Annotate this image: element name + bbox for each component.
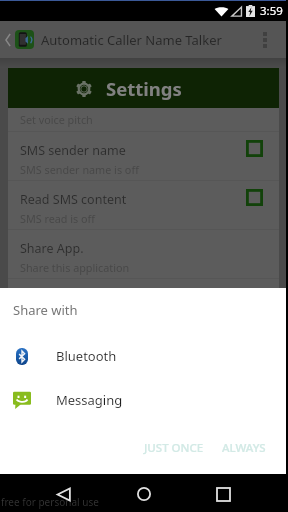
button[interactable]: Recent apps	[199, 474, 247, 512]
button[interactable]: Read SMS content	[8, 181, 279, 229]
staticText: 3:59	[260, 3, 283, 19]
button[interactable]: Home	[120, 474, 168, 512]
staticText: Read SMS content	[20, 191, 127, 208]
staticText: Automatic Caller Name Talker	[41, 31, 222, 49]
button[interactable]: Messaging	[0, 378, 286, 422]
staticText: SMS sender name is off	[20, 162, 139, 177]
staticText: SMS read is off	[20, 211, 96, 226]
staticText: free for personal use	[1, 495, 99, 509]
button[interactable]: Navigate up	[1, 26, 14, 54]
staticText: JUST ONCE	[144, 440, 204, 456]
button[interactable]: ALWAYS	[216, 434, 272, 462]
staticText: ALWAYS	[222, 440, 266, 456]
button[interactable]: Back	[40, 474, 88, 512]
button[interactable]: SMS sender name	[8, 132, 279, 180]
staticText: Messaging	[56, 391, 123, 409]
staticText: Settings	[106, 76, 182, 101]
staticText: Set voice pitch	[20, 112, 93, 127]
staticText: SMS sender name	[20, 142, 126, 159]
staticText: Share with	[13, 301, 78, 319]
button[interactable]: More options	[253, 21, 277, 58]
staticText: Share this application	[20, 260, 130, 275]
button[interactable]: Share App.	[8, 230, 279, 278]
staticText: Bluetooth	[56, 347, 117, 365]
button[interactable]: JUST ONCE	[138, 434, 210, 462]
button[interactable]: Bluetooth	[0, 334, 286, 378]
staticText: Share App.	[20, 240, 84, 257]
